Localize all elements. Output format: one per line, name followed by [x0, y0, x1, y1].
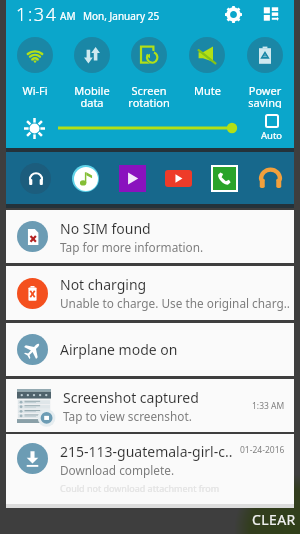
staticText: Mobile data — [74, 83, 110, 108]
button[interactable]: Video player — [109, 152, 155, 204]
staticText: Airplane mode on — [60, 340, 178, 359]
button[interactable]: CLEAR — [242, 504, 300, 534]
staticText: Auto — [261, 129, 283, 142]
staticText: Could not download attachment from serve… — [60, 482, 240, 494]
button[interactable]: Screen rotation — [120, 28, 178, 108]
button[interactable]: Mute — [178, 28, 236, 108]
button[interactable]: Power saving — [236, 28, 294, 108]
staticText: Download complete. — [60, 462, 175, 478]
button[interactable]: Auto — [252, 114, 292, 142]
button[interactable]: 215-113-guatemala-girl-c.. — [6, 434, 294, 504]
button[interactable]: Screenshot captured — [6, 379, 294, 432]
staticText: Screen rotation — [128, 83, 170, 108]
staticText: Mute — [194, 83, 221, 98]
staticText: Wi-Fi — [22, 83, 48, 98]
button[interactable]: YouTube — [155, 152, 201, 204]
staticText: Mon, January 25 — [83, 9, 160, 23]
staticText: 01-24-2016 — [240, 444, 285, 456]
staticText: Tap to view screenshot. — [63, 408, 192, 424]
staticText: Tap for more information. — [60, 239, 204, 255]
staticText: Unable to charge. Use the original charg… — [60, 295, 291, 311]
button[interactable]: No SIM found — [6, 210, 294, 263]
button[interactable]: Headset — [247, 152, 294, 204]
staticText: 1:33 AM — [252, 400, 285, 412]
button[interactable]: Mobile data — [63, 28, 120, 108]
button[interactable]: Settings — [220, 1, 246, 27]
staticText: 1:34 — [16, 2, 58, 27]
button[interactable]: Headphones — [8, 152, 62, 204]
button[interactable]: Edit quick settings — [258, 1, 284, 27]
staticText: CLEAR — [252, 510, 296, 529]
button[interactable] — [58, 119, 238, 137]
staticText: 215-113-guatemala-girl-c.. — [60, 442, 233, 461]
button[interactable]: Phone — [201, 152, 247, 204]
button[interactable]: Not charging — [6, 266, 294, 320]
staticText: Not charging — [60, 275, 147, 294]
button[interactable]: Wi-Fi — [6, 28, 63, 108]
staticText: Screenshot captured — [63, 388, 199, 407]
button[interactable]: Airplane mode on — [6, 323, 294, 376]
button[interactable]: Music — [62, 152, 109, 204]
staticText: Power saving — [248, 83, 282, 108]
staticText: AM — [60, 9, 76, 23]
staticText: No SIM found — [60, 219, 151, 238]
